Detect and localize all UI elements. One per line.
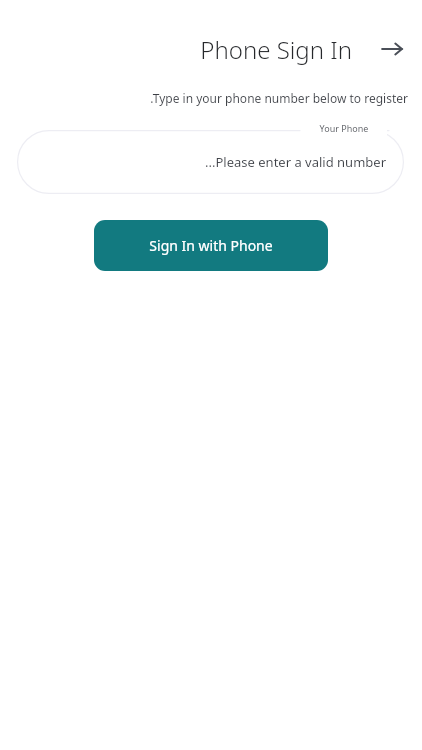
button[interactable]: Sign In with Phone xyxy=(94,220,328,271)
button[interactable]: Continue xyxy=(374,31,410,67)
button[interactable]: Phone Sign In xyxy=(198,33,352,66)
staticText: ...Please enter a valid number xyxy=(205,153,386,171)
staticText: Phone Sign In xyxy=(200,33,352,66)
staticText: .Type in your phone number below to regi… xyxy=(150,90,408,106)
button[interactable]: ...Please enter a valid number xyxy=(17,130,404,194)
staticText: Sign In with Phone xyxy=(149,236,273,255)
staticText: Your Phone Number xyxy=(301,122,387,136)
